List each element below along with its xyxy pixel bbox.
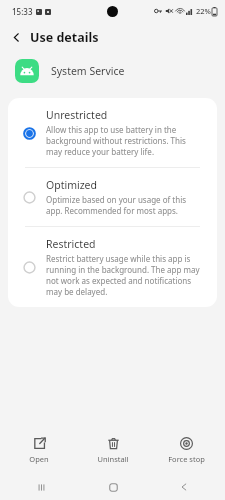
staticText: Uninstall [97,454,129,464]
staticText: 15:33 [12,6,33,17]
button[interactable]: Restricted [8,227,217,307]
staticText: Restrict battery usage while this app is… [46,253,201,297]
button[interactable]: Recent apps [11,475,71,499]
button[interactable]: Back [154,475,214,499]
button[interactable]: Force stop [151,433,221,468]
staticText: Open [29,454,49,464]
staticText: System Service [51,64,125,78]
button[interactable]: System Service [0,52,225,90]
button[interactable]: Back [6,27,26,47]
staticText: Force stop [168,454,205,464]
button[interactable]: Optimized [8,168,217,226]
staticText: 22% [196,6,211,16]
staticText: Allow this app to use battery in the bac… [46,124,201,157]
button[interactable]: Uninstall [78,433,148,468]
staticText: Use details [30,29,99,46]
button[interactable]: Unrestricted [8,98,217,167]
staticText: Unrestricted [46,108,108,122]
staticText: Optimized [46,178,97,192]
button[interactable]: Open [4,433,74,468]
button[interactable]: Home [83,475,143,499]
staticText: Optimize based on your usage of this app… [46,194,201,216]
staticText: Restricted [46,237,96,251]
